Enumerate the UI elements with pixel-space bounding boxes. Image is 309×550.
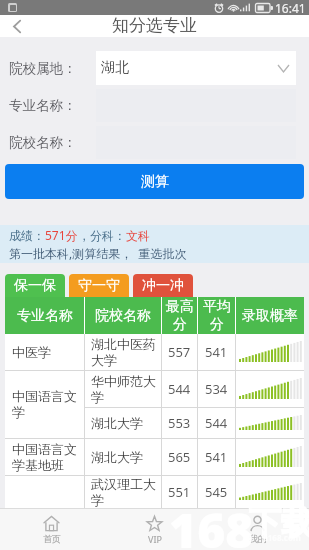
- staticText: 16:41: [275, 0, 306, 15]
- button[interactable]: 专业名称：: [9, 89, 296, 122]
- button[interactable]: VIP: [103, 509, 206, 550]
- staticText: 守一守: [78, 277, 120, 295]
- staticText: 571分: [45, 227, 78, 243]
- staticText: 湖北大学: [91, 415, 143, 431]
- staticText: 565: [168, 448, 191, 466]
- button[interactable]: 首页: [0, 509, 103, 550]
- staticText: 中国语言文学: [12, 388, 80, 421]
- staticText: 湖北: [101, 59, 129, 77]
- staticText: a168.com: [263, 532, 301, 543]
- staticText: 测算: [141, 173, 169, 191]
- staticText: 中医学: [12, 344, 51, 360]
- staticText: 专业名称: [17, 307, 73, 325]
- staticText: 院校名称: [95, 307, 151, 325]
- staticText: 我的: [249, 533, 267, 544]
- staticText: 168: [169, 497, 254, 549]
- staticText: 545: [205, 483, 228, 501]
- staticText: 553: [168, 414, 191, 432]
- staticText: 544: [168, 380, 191, 398]
- staticText: 院校名称：: [9, 134, 77, 151]
- staticText: 保一保: [14, 277, 56, 295]
- staticText: 平均 分: [203, 298, 231, 333]
- staticText: 541: [205, 448, 228, 466]
- staticText: 第一批本科,测算结果， 重选批次: [9, 245, 187, 261]
- staticText: VIP: [148, 533, 162, 545]
- staticText: 551: [168, 483, 191, 501]
- staticText: 成绩：: [9, 228, 45, 243]
- staticText: 冲一冲: [142, 277, 184, 295]
- button[interactable]: 测算: [5, 164, 304, 199]
- staticText: 首页: [43, 533, 61, 544]
- staticText: 湖北大学: [91, 449, 143, 465]
- staticText: 最高 分: [166, 298, 194, 333]
- staticText: 文科: [126, 228, 150, 243]
- staticText: 湖北中医药大学: [91, 336, 158, 369]
- button[interactable]: 保一保: [5, 274, 65, 297]
- staticText: 知分选专业: [112, 15, 197, 36]
- button[interactable]: 守一守: [69, 274, 129, 297]
- staticText: 院校属地：: [9, 60, 77, 77]
- staticText: 华中师范大学: [91, 373, 158, 406]
- staticText: 534: [205, 380, 228, 398]
- staticText: 专业名称：: [9, 97, 77, 114]
- staticText: 544: [205, 414, 228, 432]
- staticText: 中国语言文学基地班: [12, 441, 80, 474]
- staticText: 541: [205, 343, 228, 361]
- staticText: 下载: [249, 503, 309, 543]
- staticText: 武汉理工大学: [91, 476, 158, 508]
- button[interactable]: Back: [0, 15, 34, 37]
- staticText: 557: [168, 343, 191, 361]
- button[interactable]: 院校属地：: [9, 51, 296, 85]
- button[interactable]: 冲一冲: [133, 274, 193, 297]
- button[interactable]: 院校名称：: [9, 126, 296, 159]
- button[interactable]: 我的: [206, 509, 309, 550]
- staticText: 录取概率: [242, 307, 298, 325]
- staticText: ，分科：: [78, 228, 126, 243]
